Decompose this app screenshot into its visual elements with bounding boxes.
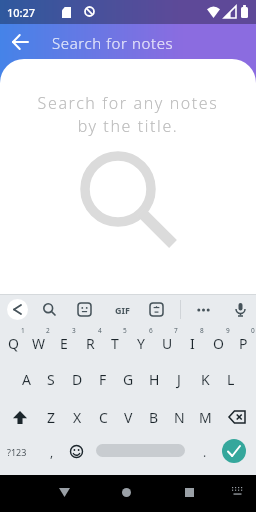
- button[interactable]: [7, 299, 28, 320]
- staticText: N: [174, 408, 185, 427]
- button[interactable]: K: [192, 368, 218, 390]
- button[interactable]: V: [115, 406, 141, 428]
- staticText: P: [239, 334, 248, 353]
- button[interactable]: I: [179, 332, 205, 354]
- staticText: H: [149, 370, 160, 389]
- staticText: 1: [21, 326, 25, 335]
- staticText: 9: [226, 326, 230, 335]
- button[interactable]: [48, 476, 80, 508]
- button[interactable]: H: [141, 368, 167, 390]
- button[interactable]: P: [230, 332, 256, 354]
- button[interactable]: Q: [0, 332, 26, 354]
- button[interactable]: T: [102, 332, 128, 354]
- button[interactable]: U: [154, 332, 180, 354]
- staticText: 8: [200, 326, 204, 335]
- staticText: Z: [47, 408, 56, 427]
- staticText: S: [47, 370, 55, 389]
- button[interactable]: [6, 28, 34, 56]
- button[interactable]: X: [64, 406, 90, 428]
- button[interactable]: Y: [128, 332, 154, 354]
- staticText: Q: [8, 334, 19, 353]
- button[interactable]: Z: [38, 406, 64, 428]
- button[interactable]: N: [166, 406, 192, 428]
- staticText: I: [190, 334, 195, 353]
- staticText: ?123: [7, 446, 27, 458]
- staticText: Search for any notes by the title.: [0, 92, 256, 137]
- staticText: L: [227, 370, 235, 389]
- staticText: U: [162, 334, 173, 353]
- staticText: GIF: [115, 304, 130, 316]
- button[interactable]: [173, 476, 205, 508]
- button[interactable]: L: [218, 368, 244, 390]
- staticText: J: [177, 370, 181, 389]
- staticText: B: [149, 408, 159, 427]
- button[interactable]: [73, 298, 96, 321]
- button[interactable]: R: [77, 332, 103, 354]
- button[interactable]: ?123: [4, 442, 30, 462]
- staticText: A: [22, 370, 31, 389]
- staticText: 6: [149, 326, 153, 335]
- button[interactable]: [223, 406, 251, 428]
- staticText: G: [123, 370, 134, 389]
- button[interactable]: D: [64, 368, 90, 390]
- staticText: 3: [72, 326, 76, 335]
- button[interactable]: [96, 444, 185, 457]
- button[interactable]: [226, 480, 248, 502]
- staticText: 10:27: [7, 5, 36, 20]
- staticText: M: [199, 408, 212, 427]
- button[interactable]: .: [198, 442, 212, 462]
- button[interactable]: [229, 298, 252, 321]
- staticText: Search for notes: [52, 33, 174, 53]
- button[interactable]: [192, 298, 215, 321]
- staticText: F: [99, 370, 107, 389]
- button[interactable]: [6, 406, 34, 428]
- staticText: K: [201, 370, 210, 389]
- button[interactable]: B: [141, 406, 167, 428]
- button[interactable]: [69, 444, 84, 459]
- staticText: X: [73, 408, 82, 427]
- button[interactable]: O: [205, 332, 231, 354]
- staticText: 5: [123, 326, 127, 335]
- staticText: D: [72, 370, 83, 389]
- button[interactable]: S: [38, 368, 64, 390]
- staticText: Y: [137, 334, 145, 353]
- staticText: O: [213, 334, 224, 353]
- staticText: V: [124, 408, 133, 427]
- staticText: ,: [50, 444, 54, 460]
- button[interactable]: [222, 439, 246, 463]
- staticText: 7: [174, 326, 178, 335]
- button[interactable]: W: [26, 332, 52, 354]
- staticText: 4: [98, 326, 102, 335]
- staticText: C: [99, 408, 108, 427]
- button[interactable]: [145, 298, 168, 321]
- staticText: 2: [46, 326, 50, 335]
- button[interactable]: ,: [44, 442, 60, 462]
- button[interactable]: [110, 476, 142, 508]
- button[interactable]: G: [115, 368, 141, 390]
- button[interactable]: C: [90, 406, 116, 428]
- button[interactable]: [38, 298, 61, 321]
- button[interactable]: GIF: [110, 298, 135, 321]
- staticText: W: [32, 334, 46, 353]
- button[interactable]: M: [192, 406, 218, 428]
- button[interactable]: A: [13, 368, 39, 390]
- staticText: 0: [251, 326, 255, 335]
- button[interactable]: E: [51, 332, 77, 354]
- button[interactable]: J: [166, 368, 192, 390]
- staticText: T: [111, 334, 119, 353]
- button[interactable]: F: [90, 368, 116, 390]
- staticText: E: [60, 334, 68, 353]
- staticText: R: [86, 334, 95, 353]
- staticText: .: [203, 444, 207, 460]
